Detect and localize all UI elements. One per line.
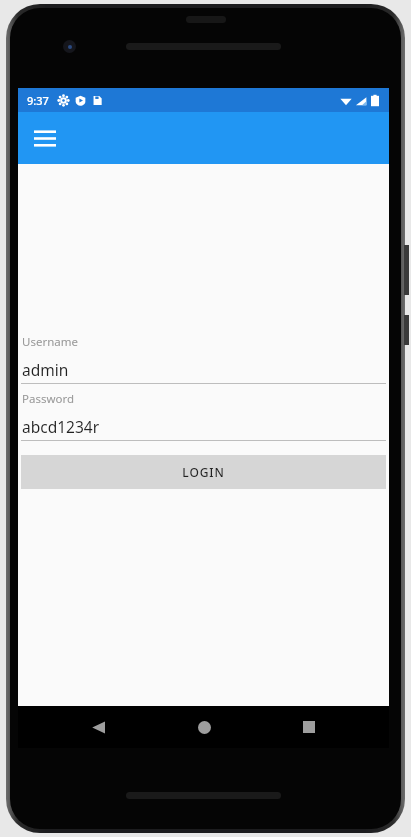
staticText: Username bbox=[22, 334, 78, 350]
button[interactable]: Username bbox=[21, 334, 386, 384]
button[interactable]: Password bbox=[21, 391, 386, 441]
staticText: admin bbox=[22, 359, 69, 380]
button[interactable]: Open navigation menu bbox=[25, 118, 65, 158]
staticText: abcd1234r bbox=[22, 416, 100, 437]
button[interactable]: Home bbox=[188, 711, 220, 743]
staticText: LOGIN bbox=[182, 464, 225, 480]
staticText: 9:37 bbox=[27, 93, 49, 108]
button[interactable]: Recent apps bbox=[293, 711, 325, 743]
staticText: Password bbox=[22, 391, 75, 407]
button[interactable]: Back bbox=[82, 711, 114, 743]
button[interactable]: LOGIN bbox=[21, 455, 386, 489]
